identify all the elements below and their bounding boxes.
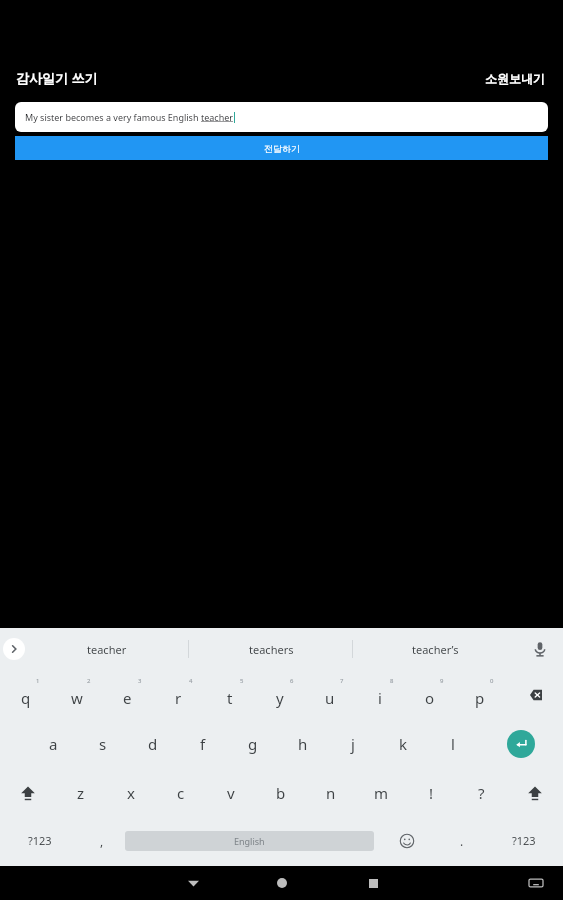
button[interactable]: q	[0, 670, 51, 719]
button[interactable]: p	[455, 670, 505, 719]
staticText: ?123	[512, 833, 536, 848]
button[interactable]: d	[128, 719, 178, 768]
button[interactable]: s	[78, 719, 128, 768]
button[interactable]: ,	[79, 817, 125, 864]
button[interactable]: x	[106, 768, 156, 817]
button[interactable]: e	[102, 670, 153, 719]
button[interactable]: ?123	[485, 817, 563, 864]
button[interactable]: w	[51, 670, 102, 719]
button[interactable]: o	[405, 670, 455, 719]
staticText: y	[276, 688, 284, 708]
button[interactable]: m	[356, 768, 406, 817]
staticText: q	[21, 688, 31, 708]
button[interactable]: More suggestions	[3, 638, 25, 660]
button[interactable]: a	[28, 719, 78, 768]
staticText: e	[123, 688, 132, 708]
staticText: g	[248, 734, 258, 754]
staticText: s	[99, 734, 107, 754]
button[interactable]: Home	[267, 868, 297, 898]
button[interactable]: z	[56, 768, 106, 817]
button[interactable]: c	[156, 768, 206, 817]
button[interactable]: Shift	[0, 768, 56, 817]
staticText: j	[351, 734, 355, 754]
button[interactable]: teachers	[189, 628, 353, 670]
staticText: English	[234, 835, 265, 847]
button[interactable]: teacher’s	[353, 628, 517, 670]
staticText: o	[425, 688, 435, 708]
staticText: .	[460, 833, 464, 849]
staticText: 감사일기 쓰기	[16, 69, 98, 87]
staticText: h	[298, 734, 308, 754]
staticText: 0	[490, 677, 494, 685]
button[interactable]: English	[125, 831, 374, 851]
staticText: My sister becomes a very famous English	[25, 111, 201, 123]
staticText: 1	[36, 677, 40, 685]
staticText: 2	[87, 677, 91, 685]
button[interactable]: j	[328, 719, 378, 768]
button[interactable]: ?123	[0, 817, 79, 864]
staticText: c	[177, 783, 185, 803]
button[interactable]: Voice input	[517, 628, 563, 670]
button[interactable]: Enter	[478, 719, 563, 768]
staticText: teacher’s	[412, 642, 459, 657]
staticText: i	[378, 688, 382, 708]
staticText: f	[200, 734, 206, 754]
staticText: b	[276, 783, 286, 803]
staticText: teacher	[87, 642, 127, 657]
staticText: w	[71, 688, 83, 708]
staticText: 4	[189, 677, 193, 685]
button[interactable]: g	[228, 719, 278, 768]
staticText: d	[148, 734, 158, 754]
button[interactable]: 소원보내기	[483, 67, 547, 90]
staticText: 6	[290, 677, 294, 685]
button[interactable]: Backspace	[505, 670, 563, 719]
staticText: 전달하기	[264, 143, 300, 154]
button[interactable]: teacher	[25, 628, 189, 670]
staticText: 8	[390, 677, 394, 685]
staticText: u	[325, 688, 335, 708]
button[interactable]: v	[206, 768, 256, 817]
staticText: ?	[478, 783, 485, 803]
staticText: a	[49, 734, 58, 754]
staticText: teachers	[249, 642, 294, 657]
staticText: 3	[138, 677, 142, 685]
staticText: !	[429, 783, 434, 803]
button[interactable]: Shift	[506, 768, 563, 817]
staticText: k	[399, 734, 408, 754]
button[interactable]: Recents	[358, 868, 388, 898]
button[interactable]: b	[256, 768, 306, 817]
button[interactable]: My sister becomes a very famous English	[15, 102, 548, 132]
staticText: n	[326, 783, 336, 803]
button[interactable]: r	[153, 670, 204, 719]
staticText: x	[127, 783, 135, 803]
staticText: l	[451, 734, 455, 754]
staticText: teacher	[201, 111, 234, 123]
staticText: 7	[340, 677, 344, 685]
button[interactable]: Emoji	[374, 817, 439, 864]
staticText: 9	[440, 677, 444, 685]
staticText: m	[374, 783, 389, 803]
staticText: 5	[240, 677, 244, 685]
staticText: r	[175, 688, 182, 708]
button[interactable]: ?	[456, 768, 506, 817]
staticText: ?123	[28, 833, 52, 848]
button[interactable]: f	[178, 719, 228, 768]
staticText: t	[227, 688, 233, 708]
button[interactable]: u	[305, 670, 355, 719]
button[interactable]: t	[204, 670, 255, 719]
button[interactable]: h	[278, 719, 328, 768]
button[interactable]: y	[255, 670, 305, 719]
staticText: p	[475, 688, 485, 708]
button[interactable]: !	[406, 768, 456, 817]
button[interactable]: n	[306, 768, 356, 817]
button[interactable]: Hide keyboard	[178, 868, 208, 898]
button[interactable]: 전달하기	[15, 136, 548, 160]
staticText: ,	[100, 833, 104, 849]
staticText: z	[77, 783, 85, 803]
button[interactable]: i	[355, 670, 405, 719]
button[interactable]: l	[428, 719, 478, 768]
button[interactable]: k	[378, 719, 428, 768]
staticText: 소원보내기	[485, 71, 545, 86]
button[interactable]: .	[439, 817, 485, 864]
button[interactable]: Switch keyboard	[521, 868, 551, 898]
